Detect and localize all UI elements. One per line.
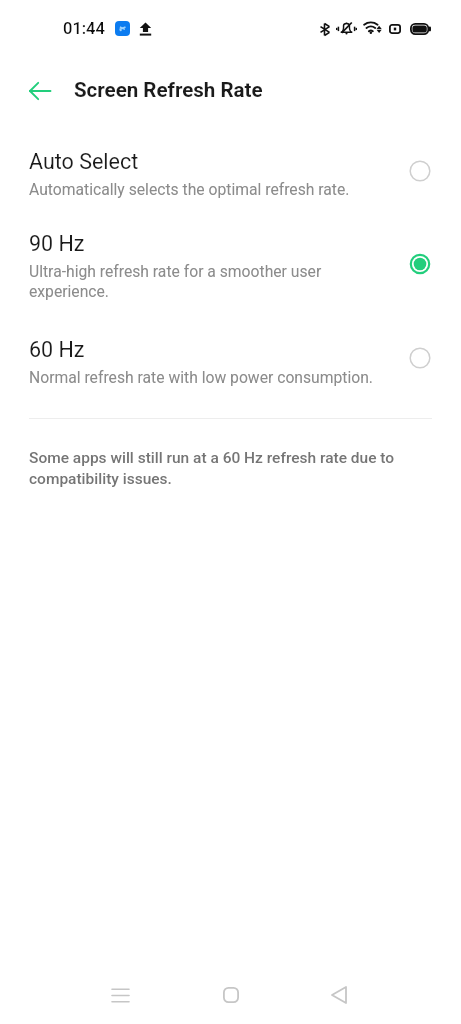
staticText: Ultra-high refresh rate for a smoother u… bbox=[29, 262, 339, 301]
staticText: 60 Hz bbox=[29, 337, 85, 362]
staticText: Auto Select bbox=[29, 149, 139, 174]
button[interactable]: Auto Select bbox=[0, 145, 461, 217]
button[interactable]: Recent apps bbox=[92, 967, 148, 1023]
button[interactable]: Back bbox=[311, 967, 367, 1023]
staticText: Screen Refresh Rate bbox=[74, 78, 263, 102]
button[interactable]: 90 Hz bbox=[0, 227, 461, 321]
button[interactable]: 60 Hz bbox=[0, 333, 461, 405]
staticText: 90 Hz bbox=[29, 231, 85, 256]
button[interactable]: Back bbox=[18, 69, 62, 113]
staticText: Automatically selects the optimal refres… bbox=[29, 180, 350, 198]
staticText: 01:44 bbox=[63, 19, 105, 38]
staticText: Normal refresh rate with low power consu… bbox=[29, 368, 373, 386]
button[interactable]: Home bbox=[203, 967, 259, 1023]
staticText: Some apps will still run at a 60 Hz refr… bbox=[29, 449, 403, 488]
